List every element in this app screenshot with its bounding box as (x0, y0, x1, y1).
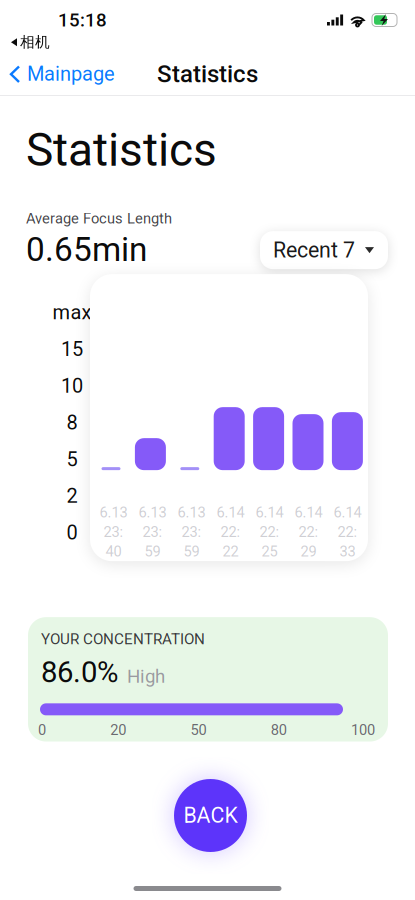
staticText: Statistics (157, 60, 258, 88)
staticText: 80 (271, 721, 287, 738)
staticText: Recent 7 (273, 238, 355, 263)
staticText: 59 (183, 543, 199, 560)
staticText: 8 (66, 411, 77, 434)
staticText: 6.14 (294, 504, 322, 521)
staticText: 20 (110, 721, 126, 738)
staticText: 10 (61, 374, 83, 398)
staticText: 86.0% (41, 655, 118, 689)
staticText: 相机 (20, 33, 50, 51)
staticText: 22: (337, 523, 357, 540)
staticText: 0.65min (26, 230, 147, 269)
staticText: 25 (261, 543, 277, 560)
staticText: 22 (222, 543, 238, 560)
staticText: 23: (103, 523, 123, 540)
staticText: 6.13 (99, 504, 127, 521)
staticText: 6.14 (255, 504, 283, 521)
staticText: 5 (66, 448, 77, 471)
staticText: 50 (190, 721, 206, 738)
staticText: 33 (339, 543, 355, 560)
staticText: 6.14 (333, 504, 361, 521)
staticText: 15:18 (58, 9, 107, 31)
button[interactable]: Recent 7 (260, 231, 388, 269)
staticText: 6.14 (216, 504, 244, 521)
button[interactable]: BACK (174, 779, 247, 852)
staticText: 22: (298, 523, 318, 540)
staticText: 29 (300, 543, 316, 560)
staticText: 23: (181, 523, 201, 540)
staticText: High (127, 665, 165, 687)
staticText: Statistics (26, 123, 217, 177)
staticText: 40 (105, 543, 121, 560)
staticText: max (52, 301, 91, 324)
staticText: 6.13 (138, 504, 166, 521)
staticText: 15 (61, 337, 83, 361)
staticText: 2 (66, 484, 77, 508)
staticText: 22: (259, 523, 279, 540)
staticText: 23: (142, 523, 162, 540)
staticText: Mainpage (27, 62, 115, 86)
staticText: 0 (38, 721, 46, 738)
staticText: 0 (66, 521, 77, 544)
staticText: 100 (351, 721, 375, 738)
staticText: 22: (220, 523, 240, 540)
button[interactable]: Mainpage (0, 56, 121, 92)
staticText: YOUR CONCENTRATION (41, 630, 205, 648)
staticText: BACK (183, 803, 237, 828)
staticText: 59 (144, 543, 160, 560)
staticText: Average Focus Length (26, 210, 172, 227)
staticText: 6.13 (177, 504, 205, 521)
